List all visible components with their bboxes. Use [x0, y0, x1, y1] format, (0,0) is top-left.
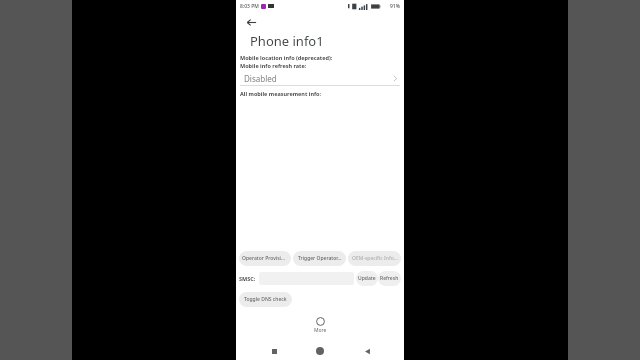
staticText: Update — [358, 275, 376, 282]
staticText: OEM-specific Info… — [352, 255, 398, 262]
button[interactable]: Trigger Operator… — [293, 251, 346, 266]
button[interactable]: Disabled — [240, 71, 400, 85]
staticText: More — [314, 327, 327, 334]
button[interactable]: Operator Provisio… — [239, 251, 291, 266]
staticText: Refresh — [380, 275, 399, 282]
staticText: Mobile location info (deprecated): — [240, 54, 333, 61]
button[interactable]: Update — [356, 271, 378, 286]
button[interactable]: Toggle DNS check — [239, 292, 292, 307]
staticText: SMSC: — [239, 275, 256, 282]
staticText: Disabled — [244, 73, 277, 84]
staticText: Mobile info refresh rate: — [240, 62, 307, 69]
button[interactable]: Home — [311, 342, 329, 360]
button[interactable]: Recents — [265, 342, 283, 360]
staticText: Toggle DNS check — [244, 296, 287, 303]
staticText: 8:03 PM — [240, 3, 259, 10]
button[interactable]: Back — [236, 12, 404, 32]
staticText: Trigger Operator… — [298, 255, 342, 262]
button[interactable]: More — [312, 315, 329, 336]
staticText: All mobile measurement info: — [240, 90, 322, 97]
button[interactable]: Back — [358, 342, 376, 360]
button[interactable]: OEM-specific Info… — [348, 251, 401, 266]
staticText: 91% — [390, 3, 400, 10]
staticText: Operator Provisio… — [242, 255, 288, 262]
staticText: Phone info1 — [250, 32, 324, 50]
button[interactable]: Refresh — [378, 271, 401, 286]
